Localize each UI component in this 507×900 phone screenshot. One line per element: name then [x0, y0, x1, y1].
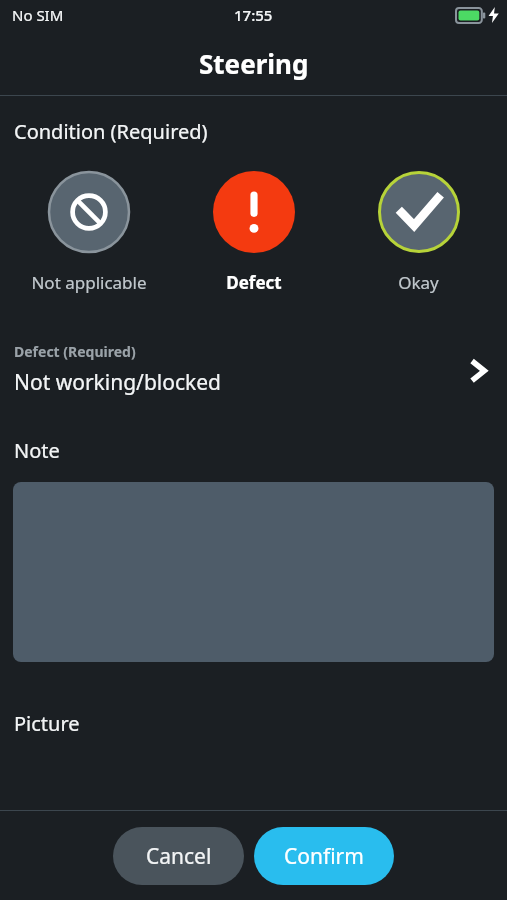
button[interactable]: Defect (Required) [0, 340, 507, 399]
other: Defect [213, 171, 295, 253]
button[interactable]: Not applicable [6, 167, 171, 298]
staticText: Not applicable [31, 271, 147, 294]
staticText: Steering [199, 46, 309, 81]
button[interactable]: Confirm [254, 827, 394, 885]
button[interactable]: Defect [171, 167, 336, 298]
staticText: Condition (Required) [14, 118, 208, 145]
staticText: Note [14, 437, 60, 464]
button[interactable]: Okay [336, 167, 501, 298]
staticText: Confirm [284, 842, 364, 871]
staticText: Not working/blocked [14, 368, 222, 397]
staticText: Defect [226, 271, 282, 294]
staticText: Okay [398, 271, 439, 294]
staticText: Defect (Required) [14, 342, 136, 361]
other: Not applicable [48, 171, 130, 253]
staticText: 17:55 [234, 5, 273, 25]
staticText: No SIM [12, 5, 64, 25]
staticText: Picture [14, 710, 80, 737]
staticText: Cancel [146, 842, 212, 871]
other: Okay [378, 171, 460, 253]
button[interactable]: Cancel [113, 827, 244, 885]
